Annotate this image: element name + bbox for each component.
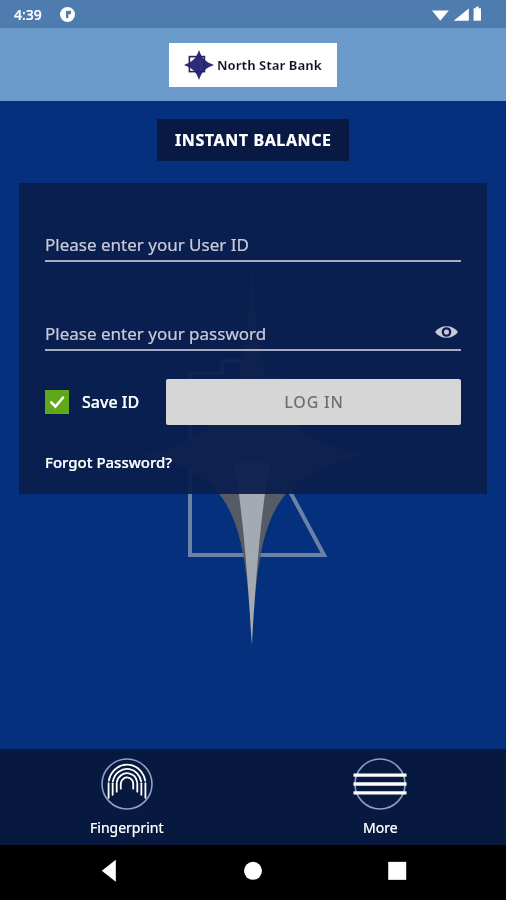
- staticText: 4:39: [14, 5, 42, 24]
- staticText: Please enter your User ID: [45, 233, 249, 256]
- staticText: North Star Bank: [217, 56, 322, 74]
- button[interactable]: More: [336, 754, 424, 841]
- button[interactable]: Fingerprint: [72, 754, 182, 841]
- staticText: More: [363, 818, 398, 837]
- staticText: Fingerprint: [90, 818, 164, 837]
- staticText: Please enter your password: [45, 322, 267, 345]
- button[interactable]: Please enter your User ID: [45, 226, 461, 260]
- staticText: Save ID: [82, 391, 140, 413]
- staticText: LOG IN: [284, 391, 344, 413]
- button[interactable]: Forgot Password?: [45, 452, 173, 472]
- button[interactable]: INSTANT BALANCE: [157, 119, 349, 161]
- button[interactable]: LOG IN: [166, 379, 461, 425]
- button[interactable]: Save ID: [45, 390, 140, 414]
- button[interactable]: Show password: [431, 317, 461, 347]
- button[interactable]: Please enter your password: [45, 315, 461, 349]
- staticText: Forgot Password?: [45, 452, 173, 472]
- staticText: INSTANT BALANCE: [175, 129, 332, 151]
